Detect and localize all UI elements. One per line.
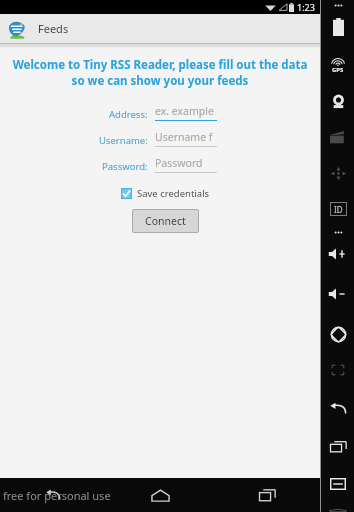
button[interactable]: Battery xyxy=(325,14,351,40)
button[interactable]: Volume up xyxy=(325,241,351,267)
button[interactable]: Recents xyxy=(325,433,351,459)
button[interactable]: Home xyxy=(107,478,214,512)
staticText: Welcome to Tiny RSS Reader, please fill … xyxy=(6,57,314,88)
button[interactable]: GPS xyxy=(325,52,351,78)
button[interactable]: Rotate xyxy=(325,321,351,347)
button[interactable]: D-pad xyxy=(325,160,351,186)
button[interactable]: Menu xyxy=(325,471,351,497)
button[interactable]: Volume down xyxy=(325,281,351,307)
staticText: Username f xyxy=(155,130,213,144)
button[interactable]: Home xyxy=(325,509,351,512)
staticText: ID xyxy=(334,204,343,215)
staticText: Feeds xyxy=(38,21,69,36)
button[interactable]: Back xyxy=(325,395,351,421)
button[interactable]: Recents xyxy=(214,478,320,512)
staticText: Password xyxy=(155,156,203,170)
staticText: Address: xyxy=(109,108,148,121)
button[interactable]: Video xyxy=(325,124,351,150)
button[interactable]: ID xyxy=(325,196,351,222)
staticText: 1:23 xyxy=(297,1,315,13)
button[interactable]: Connect xyxy=(132,209,199,233)
button[interactable]: Resize xyxy=(325,357,351,383)
staticText: ex. example xyxy=(155,104,214,118)
staticText: GPS xyxy=(332,66,344,74)
staticText: Save credentials xyxy=(137,187,210,200)
staticText: free for personal use xyxy=(3,488,111,503)
button[interactable]: Back xyxy=(0,478,107,512)
staticText: Connect xyxy=(145,214,186,228)
button[interactable]: Save credentials xyxy=(121,187,320,200)
button[interactable]: Camera xyxy=(325,88,351,114)
staticText: Password: xyxy=(102,160,148,173)
staticText: Username: xyxy=(99,134,148,147)
